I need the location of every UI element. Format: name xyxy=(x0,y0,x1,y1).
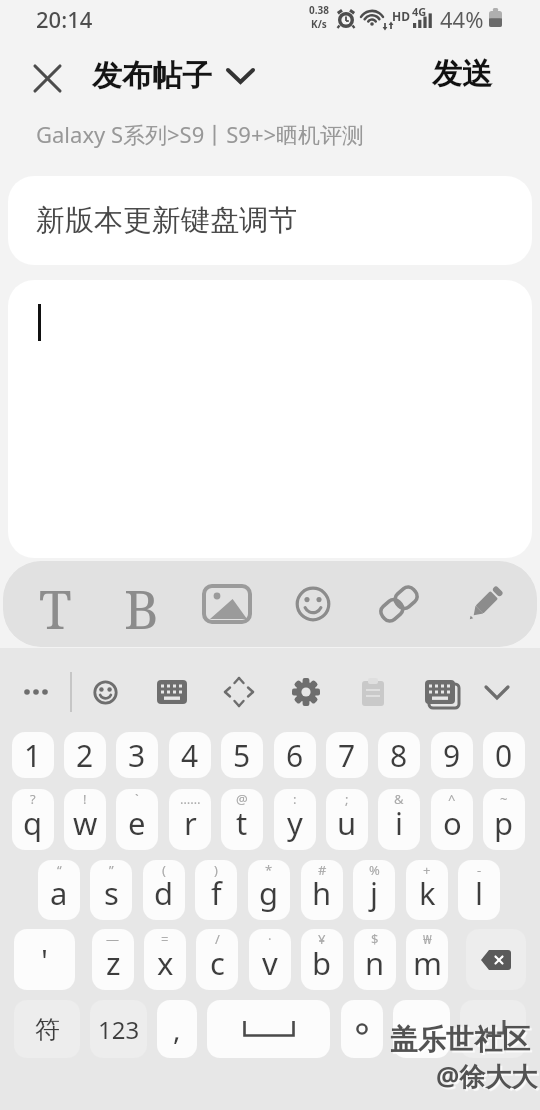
button[interactable] xyxy=(281,572,345,636)
button[interactable]: % xyxy=(353,860,395,920)
button[interactable]: # xyxy=(301,860,343,920)
button[interactable]: 6 xyxy=(274,732,316,778)
staticText: r xyxy=(184,802,197,844)
staticText: ^ xyxy=(448,790,456,808)
button[interactable]: 2 xyxy=(64,732,106,778)
button[interactable] xyxy=(475,666,519,718)
staticText: c xyxy=(210,942,225,984)
button[interactable]: ? xyxy=(12,789,54,850)
button[interactable]: ¥ xyxy=(301,929,343,990)
button[interactable] xyxy=(22,58,72,98)
button[interactable] xyxy=(207,1000,330,1058)
staticText: z xyxy=(106,942,121,984)
button[interactable]: 0 xyxy=(483,732,525,778)
staticText: , xyxy=(173,1010,181,1048)
button[interactable]: 5 xyxy=(221,732,263,778)
staticText: ! xyxy=(83,790,87,808)
button[interactable]: - xyxy=(458,860,500,920)
staticText: ? xyxy=(30,790,36,808)
staticText: 123 xyxy=(98,1013,140,1046)
button[interactable]: ^ xyxy=(431,789,473,850)
button[interactable]: 发送 xyxy=(420,52,504,96)
button[interactable]: 3 xyxy=(116,732,158,778)
button[interactable]: & xyxy=(378,789,420,850)
staticText: 20:14 xyxy=(36,4,93,34)
button[interactable]: * xyxy=(248,860,290,920)
button[interactable]: / xyxy=(196,929,238,990)
button[interactable]: ~ xyxy=(483,789,525,850)
button[interactable]: @ xyxy=(221,789,263,850)
button[interactable]: ! xyxy=(64,789,106,850)
staticText: 2 xyxy=(76,735,94,776)
button[interactable]: 123 xyxy=(90,1000,147,1058)
staticText: i xyxy=(395,802,403,844)
button[interactable]: 新版本更新键盘调节 xyxy=(8,176,532,265)
button[interactable]: + xyxy=(406,860,448,920)
button[interactable]: : xyxy=(274,789,316,850)
button[interactable] xyxy=(453,572,517,636)
button[interactable]: ₩ xyxy=(406,929,448,990)
staticText: * xyxy=(265,861,273,879)
button[interactable]: 1 xyxy=(12,732,54,778)
button[interactable]: ) xyxy=(195,860,237,920)
button[interactable]: ( xyxy=(143,860,185,920)
button[interactable] xyxy=(393,1000,450,1058)
staticText: 4 xyxy=(181,735,199,776)
button[interactable]: $ xyxy=(354,929,396,990)
button[interactable]: 8 xyxy=(378,732,420,778)
button[interactable] xyxy=(341,1000,383,1058)
staticText: / xyxy=(215,930,220,948)
button[interactable]: 发布帖子 xyxy=(92,56,255,96)
button[interactable] xyxy=(351,666,395,718)
staticText: 5 xyxy=(233,735,251,776)
button[interactable] xyxy=(150,666,194,718)
staticText: ) xyxy=(214,861,218,879)
button[interactable]: · xyxy=(249,929,291,990)
staticText: 发送 xyxy=(432,55,492,93)
staticText: 新版本更新键盘调节 xyxy=(36,202,297,239)
staticText: @ xyxy=(236,790,248,808)
button[interactable]: ” xyxy=(90,860,132,920)
button[interactable] xyxy=(195,572,259,636)
button[interactable] xyxy=(217,666,261,718)
button[interactable]: 4 xyxy=(169,732,211,778)
button[interactable]: ; xyxy=(326,789,368,850)
staticText: & xyxy=(394,790,404,808)
button[interactable] xyxy=(8,280,532,558)
staticText: 6 xyxy=(286,735,304,776)
button[interactable] xyxy=(83,666,127,718)
button[interactable]: , xyxy=(157,1000,197,1058)
button[interactable]: 符 xyxy=(14,1000,80,1058)
staticText: l xyxy=(475,872,483,914)
button[interactable]: ` xyxy=(116,789,158,850)
staticText: ~ xyxy=(500,790,508,808)
staticText: 9 xyxy=(443,735,461,776)
staticText: ( xyxy=(162,861,166,879)
staticText: Galaxy S系列>S9丨S9+>晒机评测 xyxy=(36,119,365,149)
staticText: $ xyxy=(371,930,379,948)
staticText: g xyxy=(259,872,279,914)
button[interactable] xyxy=(460,1000,526,1058)
staticText: x xyxy=(157,942,174,984)
button[interactable] xyxy=(466,929,526,990)
staticText: j xyxy=(370,872,378,914)
staticText: m xyxy=(413,942,442,984)
staticText: B xyxy=(124,572,159,636)
staticText: K/s xyxy=(311,17,327,31)
staticText: v xyxy=(262,942,278,984)
button[interactable]: “ xyxy=(38,860,80,920)
button[interactable]: …… xyxy=(169,789,211,850)
button[interactable]: ' xyxy=(14,929,75,990)
staticText: 发布帖子 xyxy=(92,57,212,95)
button[interactable]: T xyxy=(23,572,87,636)
button[interactable] xyxy=(284,666,328,718)
button[interactable]: B xyxy=(109,572,173,636)
button[interactable]: — xyxy=(92,929,134,990)
button[interactable] xyxy=(14,666,58,718)
button[interactable] xyxy=(418,666,462,718)
button[interactable]: = xyxy=(144,929,186,990)
button[interactable] xyxy=(367,572,431,636)
button[interactable]: 7 xyxy=(326,732,368,778)
button[interactable]: 9 xyxy=(431,732,473,778)
staticText: w xyxy=(73,802,98,844)
